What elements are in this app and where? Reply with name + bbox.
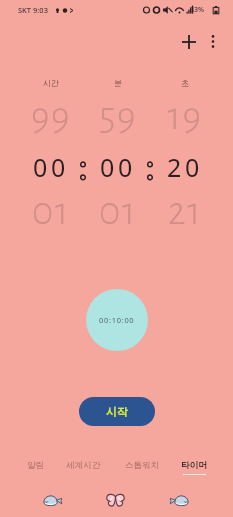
staticText: 19	[143, 97, 227, 137]
button[interactable]: 알림	[8, 460, 64, 480]
staticText: 33%	[190, 5, 204, 15]
staticText: 00	[76, 150, 160, 184]
staticText: SKT 9:03	[18, 5, 48, 15]
button[interactable]: 타이머	[166, 460, 222, 480]
button[interactable]: 시작	[79, 397, 155, 426]
staticText: 세계시간	[66, 460, 101, 471]
button[interactable]: More options	[200, 29, 225, 54]
staticText: 분	[76, 78, 160, 88]
button[interactable]: Add timer	[176, 29, 202, 55]
staticText: 00	[9, 150, 93, 184]
staticText: 99	[9, 97, 93, 137]
staticText: 21	[143, 192, 227, 232]
button[interactable]: 00:10:00	[86, 289, 148, 351]
button[interactable]: 스톱워치	[114, 460, 170, 480]
staticText: 20	[143, 150, 227, 184]
staticText: 시작	[106, 405, 128, 419]
staticText: 00:10:00	[99, 315, 135, 325]
button[interactable]: Back	[41, 493, 62, 507]
button[interactable]: Home	[106, 493, 125, 507]
staticText: 스톱워치	[125, 460, 160, 471]
staticText: 59	[76, 97, 160, 137]
button[interactable]: 세계시간	[55, 460, 111, 480]
staticText: 시간	[9, 78, 93, 88]
staticText: 알림	[27, 460, 45, 471]
button[interactable]: Recent apps	[170, 493, 191, 507]
staticText: 타이머	[181, 460, 207, 471]
staticText: 01	[76, 192, 160, 232]
staticText: 초	[143, 78, 227, 88]
staticText: 01	[9, 192, 93, 232]
